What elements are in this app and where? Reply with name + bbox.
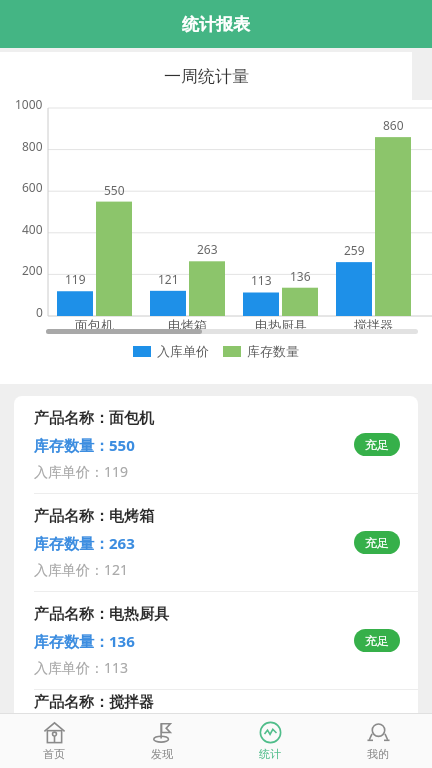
- staticText: 121: [158, 271, 179, 287]
- button[interactable]: 充足: [354, 718, 400, 741]
- staticText: 库存数量：136: [34, 631, 135, 651]
- staticText: 400: [22, 221, 43, 237]
- staticText: 入库单价：113: [34, 658, 129, 677]
- staticText: 发现: [151, 747, 173, 761]
- staticText: 1000: [15, 96, 43, 112]
- button[interactable]: 充足: [354, 433, 400, 456]
- staticText: 统计报表: [182, 14, 250, 35]
- staticText: 263: [197, 241, 218, 257]
- staticText: 库存数量: [247, 343, 299, 359]
- staticText: 入库单价：259: [34, 746, 129, 765]
- staticText: 200: [22, 262, 43, 278]
- staticText: 我的: [367, 747, 389, 761]
- staticText: 一周统计量: [164, 66, 249, 87]
- button[interactable]: 产品名称：电烤箱: [14, 494, 418, 591]
- button[interactable]: 充足: [354, 629, 400, 652]
- staticText: 113: [251, 272, 272, 288]
- staticText: 860: [383, 117, 404, 133]
- staticText: 充足: [365, 535, 389, 550]
- staticText: 库存数量：550: [34, 435, 135, 455]
- staticText: 统计: [259, 747, 281, 761]
- staticText: 充足: [365, 722, 389, 737]
- staticText: 产品名称：电烤箱: [34, 507, 154, 526]
- staticText: 库存数量：860: [34, 719, 135, 739]
- staticText: 119: [65, 271, 86, 287]
- staticText: 入库单价：121: [34, 560, 129, 579]
- staticText: 电烤箱: [168, 317, 207, 333]
- staticText: 0: [36, 304, 43, 320]
- staticText: 550: [104, 182, 125, 198]
- staticText: 电热厨具: [255, 317, 307, 333]
- staticText: 首页: [43, 747, 65, 761]
- staticText: 搅拌器: [354, 317, 393, 333]
- staticText: 136: [290, 268, 311, 284]
- staticText: 充足: [365, 437, 389, 452]
- button[interactable]: 充足: [354, 531, 400, 554]
- staticText: 库存数量：263: [34, 533, 135, 553]
- button[interactable]: 统计: [216, 721, 324, 761]
- button[interactable]: 我的: [324, 721, 432, 761]
- staticText: 产品名称：搅拌器: [34, 693, 154, 712]
- button[interactable]: 产品名称：面包机: [14, 396, 418, 493]
- staticText: 产品名称：电热厨具: [34, 605, 169, 624]
- staticText: 600: [22, 179, 43, 195]
- button[interactable]: 产品名称：搅拌器: [14, 690, 418, 768]
- staticText: 800: [22, 138, 43, 154]
- staticText: 面包机: [75, 317, 114, 333]
- staticText: 259: [344, 242, 365, 258]
- staticText: 入库单价：119: [34, 462, 129, 481]
- button[interactable]: 产品名称：电热厨具: [14, 592, 418, 689]
- staticText: 入库单价: [157, 343, 209, 359]
- staticText: 充足: [365, 633, 389, 648]
- staticText: 产品名称：面包机: [34, 409, 154, 428]
- button[interactable]: 发现: [108, 721, 216, 761]
- button[interactable]: 首页: [0, 721, 108, 761]
